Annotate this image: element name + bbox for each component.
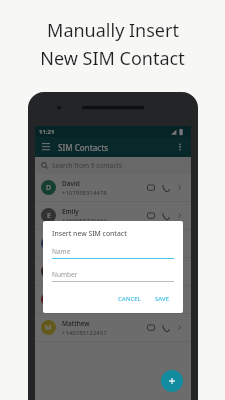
- button[interactable]: Open contact details: [174, 322, 185, 333]
- staticText: M: [45, 323, 52, 333]
- staticText: Search from 9 contacts: [52, 161, 122, 170]
- button[interactable]: Open contact details: [174, 294, 185, 305]
- staticText: New SIM Contact: [40, 46, 185, 71]
- staticText: James: [62, 235, 81, 244]
- button[interactable]: Open contact details: [174, 266, 185, 277]
- button[interactable]: D: [35, 174, 191, 201]
- staticText: Insert new SIM contact: [52, 229, 127, 238]
- button[interactable]: Add contact: [161, 370, 183, 392]
- staticText: Name: [52, 247, 71, 256]
- button[interactable]: Name: [52, 247, 174, 259]
- button[interactable]: L: [35, 258, 191, 285]
- button[interactable]: Send message: [144, 181, 157, 194]
- staticText: SIM Contacts: [58, 142, 109, 153]
- button[interactable]: Open contact details: [174, 238, 185, 249]
- staticText: Manually Insert: [47, 18, 179, 43]
- staticText: SAVE: [155, 295, 170, 303]
- staticText: 11:21: [39, 128, 55, 136]
- button[interactable]: Call: [159, 209, 172, 222]
- staticText: +134778851120: [62, 245, 107, 253]
- button[interactable]: Open contact details: [174, 210, 185, 221]
- staticText: +169958776432: [62, 217, 107, 225]
- button[interactable]: Search from 9 contacts: [35, 157, 191, 174]
- staticText: David: [62, 179, 80, 188]
- staticText: D: [46, 183, 52, 193]
- staticText: Matthew: [62, 319, 90, 328]
- button[interactable]: Call: [159, 181, 172, 194]
- staticText: E: [47, 211, 51, 221]
- button[interactable]: Send message: [144, 293, 157, 306]
- staticText: +147958774136: [62, 273, 107, 281]
- staticText: Emily: [62, 207, 79, 216]
- staticText: CANCEL: [118, 295, 141, 303]
- button[interactable]: Send message: [144, 209, 157, 222]
- button[interactable]: Call: [159, 293, 172, 306]
- button[interactable]: E: [35, 202, 191, 229]
- staticText: +140785122457: [62, 329, 107, 337]
- button[interactable]: SAVE: [151, 293, 174, 305]
- staticText: Number: [52, 270, 78, 279]
- button[interactable]: CANCEL: [114, 293, 145, 305]
- button[interactable]: Send message: [144, 321, 157, 334]
- button[interactable]: More options: [174, 141, 186, 153]
- button[interactable]: Call: [159, 321, 172, 334]
- button[interactable]: J: [35, 230, 191, 257]
- button[interactable]: Open navigation drawer: [35, 137, 191, 157]
- button[interactable]: Number: [52, 270, 174, 282]
- button[interactable]: L: [35, 286, 191, 313]
- button[interactable]: Open contact details: [174, 182, 185, 193]
- button[interactable]: M: [35, 314, 191, 341]
- staticText: +107958314478: [62, 189, 107, 197]
- button[interactable]: Open navigation drawer: [40, 141, 52, 153]
